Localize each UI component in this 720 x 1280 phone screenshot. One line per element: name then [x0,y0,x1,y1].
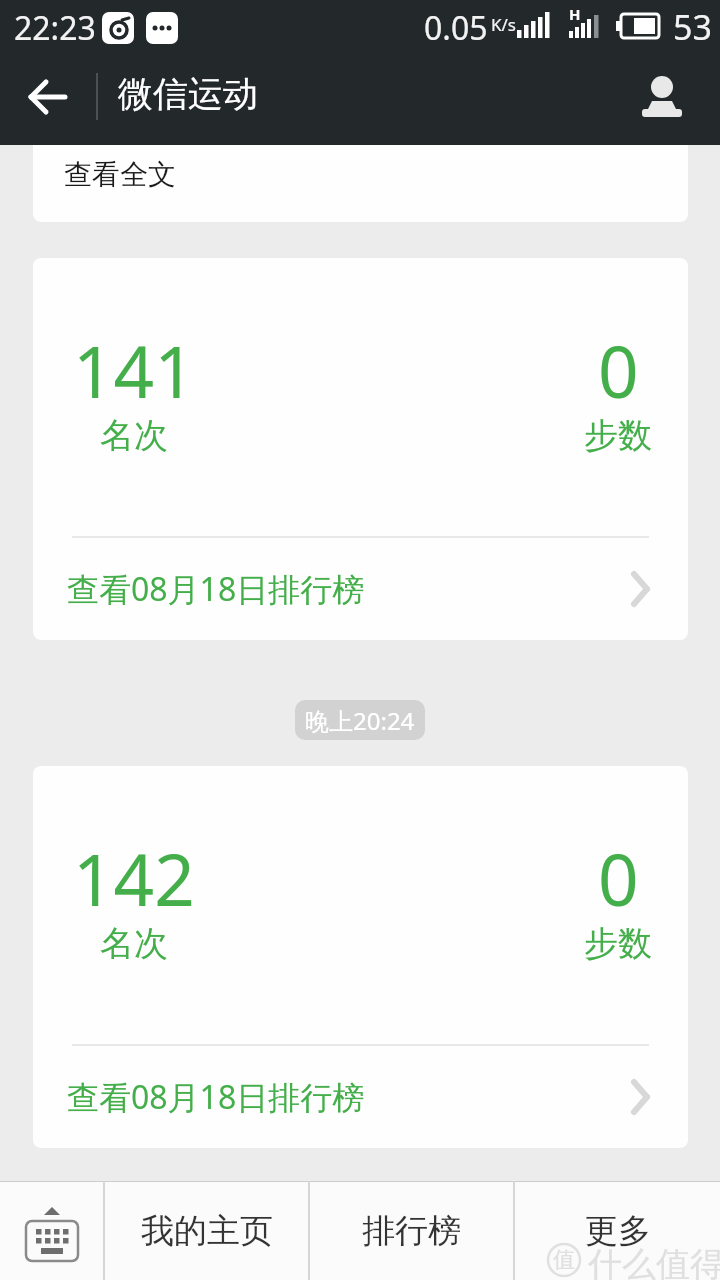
staticText: 我的主页 [141,1210,273,1252]
staticText: 142 [73,830,195,927]
staticText: 查看全文 [64,157,176,192]
button[interactable] [19,77,79,117]
button[interactable]: 更多 [515,1181,720,1280]
button[interactable]: 查看全文 [33,145,688,222]
button[interactable]: 查看08月18日排行榜 [33,1046,688,1148]
staticText: 值 [553,1246,575,1274]
staticText: 查看08月18日排行榜 [67,1075,365,1119]
staticText: 0 [598,322,639,419]
staticText: 步数 [584,922,652,965]
staticText: 0.05 [424,6,488,50]
staticText: 53 [673,4,712,50]
button[interactable] [637,73,687,121]
staticText: 排行榜 [362,1210,461,1252]
button[interactable]: 查看08月18日排行榜 [33,538,688,640]
staticText: 名次 [100,922,168,965]
staticText: 步数 [584,414,652,457]
staticText: 查看08月18日排行榜 [67,567,365,611]
staticText: 微信运动 [118,72,258,116]
staticText: 0 [598,830,639,927]
staticText: K/s [491,13,516,36]
staticText: 141 [73,322,195,419]
staticText: 什么值得买 [588,1243,720,1280]
staticText: H [569,4,581,24]
staticText: 更多 [585,1210,651,1252]
staticText: 22:23 [14,6,96,50]
button[interactable]: 我的主页 [105,1181,308,1280]
staticText: 晚上20:24 [305,704,415,737]
button[interactable] [0,1181,103,1280]
button[interactable]: 排行榜 [310,1181,513,1280]
staticText: 名次 [100,414,168,457]
